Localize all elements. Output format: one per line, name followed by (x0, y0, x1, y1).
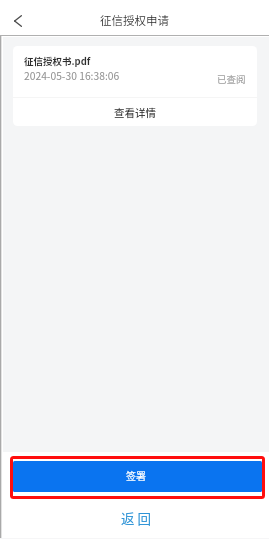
staticText: 返 回 (121, 508, 152, 528)
staticText: 已查阅 (217, 72, 246, 86)
button[interactable]: 签署 (13, 461, 262, 492)
button[interactable]: 查看详情 (13, 98, 257, 126)
button[interactable]: 返 回 (107, 505, 166, 531)
button[interactable]: Back (0, 3, 36, 38)
staticText: 征信授权书.pdf (24, 54, 91, 68)
staticText: 征信授权申请 (100, 12, 169, 29)
staticText: 查看详情 (114, 105, 156, 120)
staticText: 签署 (126, 468, 146, 482)
staticText: 2024-05-30 16:38:06 (24, 68, 120, 83)
